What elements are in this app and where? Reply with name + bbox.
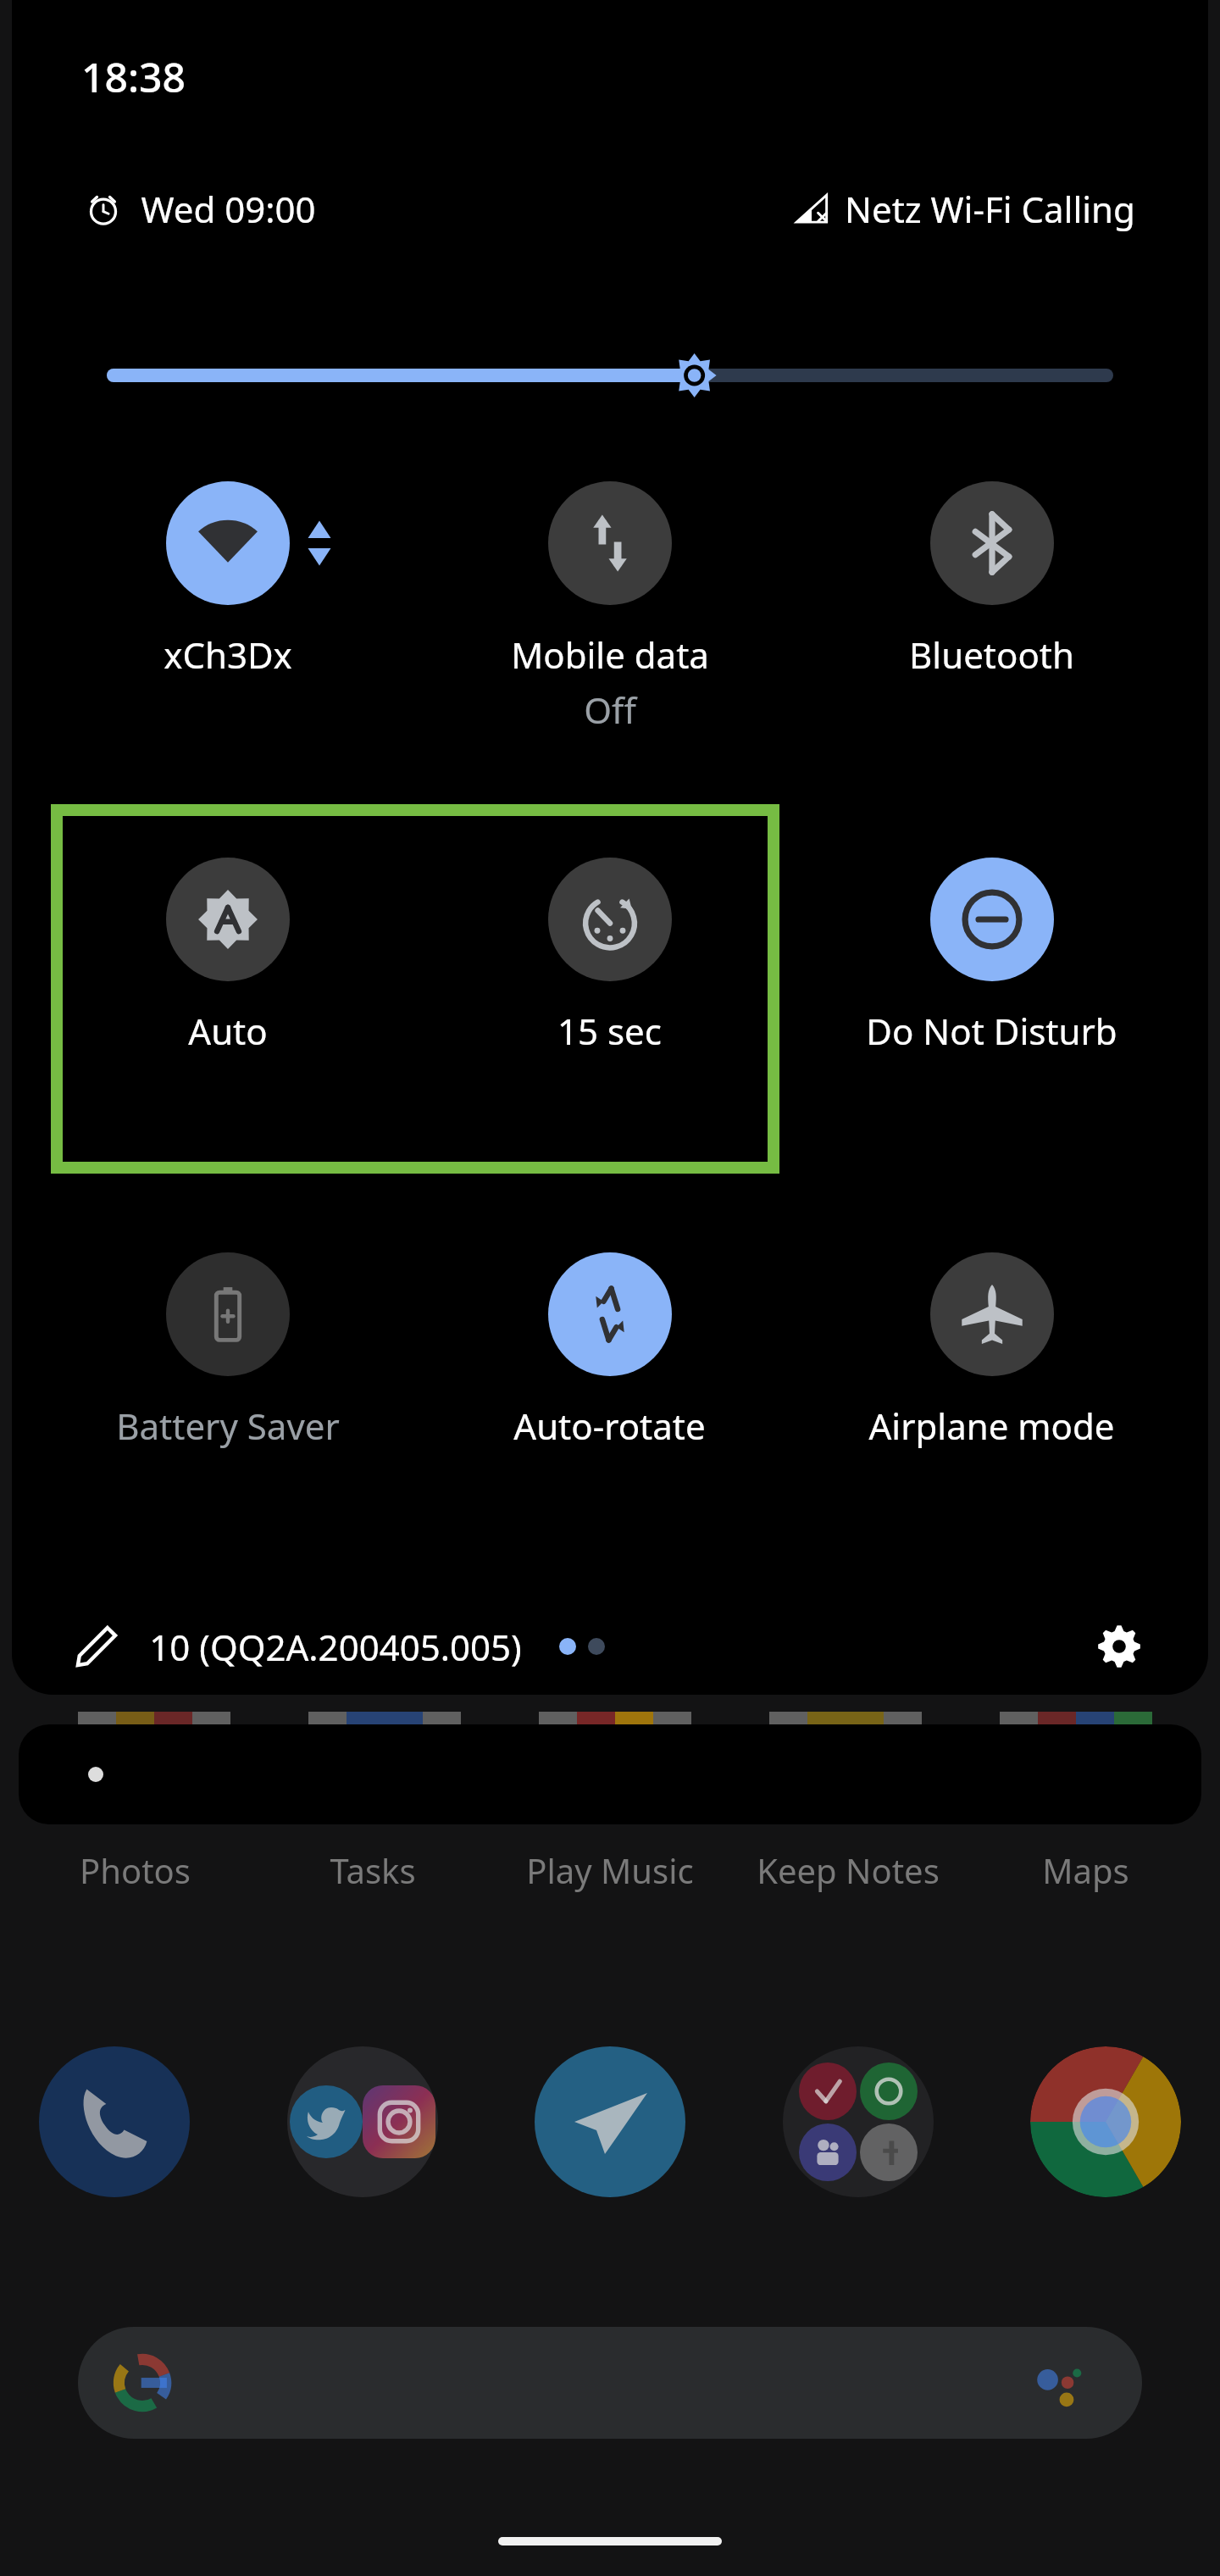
staticText: Mobile data bbox=[511, 630, 709, 679]
button[interactable]: Mobile data bbox=[419, 481, 801, 734]
button[interactable]: xCh3Dx bbox=[37, 481, 419, 679]
staticText: Maps bbox=[1042, 1847, 1129, 1893]
staticText: Tasks bbox=[330, 1847, 416, 1893]
button[interactable]: Work folder bbox=[783, 2046, 934, 2197]
button[interactable] bbox=[78, 2327, 1142, 2439]
staticText: Airplane mode bbox=[868, 1402, 1115, 1450]
button[interactable]: Chrome bbox=[1030, 2046, 1181, 2197]
staticText: Wed 09:00 bbox=[141, 185, 316, 233]
button[interactable]: Airplane mode bbox=[801, 1252, 1183, 1450]
staticText: Play Music bbox=[526, 1847, 694, 1893]
staticText: Keep Notes bbox=[757, 1847, 940, 1893]
staticText: Battery Saver bbox=[116, 1402, 340, 1450]
staticText: Do Not Disturb bbox=[866, 1007, 1117, 1055]
staticText: Bluetooth bbox=[909, 630, 1074, 679]
button[interactable]: Social folder bbox=[287, 2046, 438, 2197]
button[interactable] bbox=[114, 329, 1106, 422]
button[interactable]: Do Not Disturb bbox=[801, 858, 1183, 1055]
button[interactable]: 15 sec bbox=[419, 858, 801, 1055]
button[interactable]: Edit tiles bbox=[64, 1614, 129, 1679]
staticText: xCh3Dx bbox=[164, 630, 292, 679]
button[interactable]: Auto-rotate bbox=[419, 1252, 801, 1450]
button[interactable]: Settings bbox=[1083, 1610, 1156, 1683]
staticText: 10 (QQ2A.200405.005) bbox=[149, 1623, 522, 1671]
button[interactable]: Telegram bbox=[535, 2046, 685, 2197]
button[interactable]: Auto bbox=[37, 858, 419, 1055]
button[interactable]: Phone bbox=[39, 2046, 190, 2197]
staticText: Auto-rotate bbox=[513, 1402, 706, 1450]
staticText: Photos bbox=[80, 1847, 191, 1893]
staticText: Netz Wi-Fi Calling bbox=[845, 185, 1135, 233]
button[interactable]: Battery Saver bbox=[37, 1252, 419, 1450]
button[interactable]: Bluetooth bbox=[801, 481, 1183, 679]
staticText: 15 sec bbox=[557, 1007, 662, 1055]
staticText: 18:38 bbox=[81, 49, 186, 104]
staticText: Auto bbox=[188, 1007, 268, 1055]
staticText: Off bbox=[584, 686, 636, 734]
